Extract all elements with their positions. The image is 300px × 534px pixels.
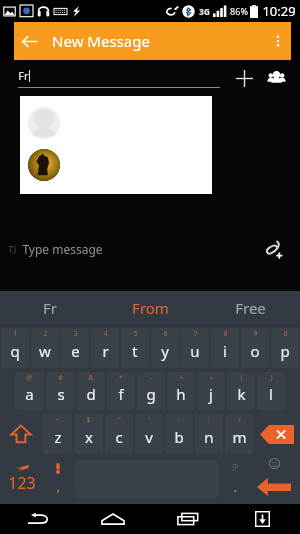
staticText: 4 xyxy=(103,329,108,339)
button[interactable]: * xyxy=(107,372,135,410)
button[interactable]: ' xyxy=(135,414,163,454)
button[interactable]: 123 xyxy=(0,456,44,502)
staticText: ~ xyxy=(55,415,60,425)
staticText: b xyxy=(174,427,184,447)
staticText: Fr xyxy=(43,298,57,318)
button[interactable]: Fr xyxy=(18,68,220,88)
staticText: w xyxy=(39,341,51,361)
button[interactable]: Choose contacts xyxy=(262,64,290,92)
staticText: 3G xyxy=(199,6,210,17)
staticText: h xyxy=(176,384,186,404)
button[interactable]: Back xyxy=(14,26,44,56)
button[interactable]: Backspace xyxy=(254,412,300,456)
staticText: # xyxy=(58,373,63,383)
staticText: 9 xyxy=(253,329,258,339)
staticText: - xyxy=(150,373,153,383)
button[interactable]: Enter xyxy=(248,456,300,502)
staticText: p xyxy=(280,341,290,361)
staticText: . xyxy=(233,476,238,496)
staticText: @ xyxy=(26,373,33,383)
staticText: k xyxy=(237,384,246,404)
button[interactable]: 3 xyxy=(61,328,89,368)
staticText: Free xyxy=(235,298,266,318)
button[interactable] xyxy=(20,144,212,186)
button[interactable]: # xyxy=(46,372,75,410)
staticText: i xyxy=(223,341,227,361)
staticText: * xyxy=(119,373,123,383)
button[interactable]: Recent apps xyxy=(150,504,225,534)
staticText: ' xyxy=(148,415,150,425)
button[interactable]: , xyxy=(44,456,72,502)
button[interactable]: From xyxy=(100,291,200,325)
button[interactable]: 6 xyxy=(151,328,179,368)
staticText: " xyxy=(118,415,121,425)
staticText: v xyxy=(145,427,153,447)
staticText: g xyxy=(146,384,156,404)
button[interactable]: = xyxy=(197,372,225,410)
button[interactable]: ; xyxy=(195,414,223,454)
button[interactable]: 7 xyxy=(181,328,209,368)
button[interactable]: - xyxy=(137,372,165,410)
staticText: 86% xyxy=(230,5,248,17)
staticText: & xyxy=(88,373,94,383)
button[interactable]: Shift xyxy=(0,412,42,456)
staticText: = xyxy=(209,373,214,383)
staticText: : xyxy=(178,415,180,425)
staticText: 7 xyxy=(193,329,198,339)
button[interactable]: 0 xyxy=(271,328,299,368)
button[interactable]: Free xyxy=(200,291,300,325)
button[interactable]: @ xyxy=(15,372,44,410)
staticText: q xyxy=(10,341,20,361)
button[interactable]: !? xyxy=(222,456,248,502)
staticText: ) xyxy=(270,373,273,383)
button[interactable]: 1 xyxy=(1,328,29,368)
staticText: 5 xyxy=(133,329,138,339)
staticText: u xyxy=(190,341,200,361)
staticText: y xyxy=(161,341,169,361)
button[interactable]: Type message xyxy=(22,241,258,257)
staticText: z xyxy=(54,427,62,447)
button[interactable]: 4 xyxy=(91,328,119,368)
button[interactable]: ) xyxy=(257,372,285,410)
button[interactable] xyxy=(20,102,212,144)
button[interactable]: / xyxy=(225,414,253,454)
staticText: T) xyxy=(8,243,16,255)
staticText: From xyxy=(132,298,169,318)
button[interactable]: 9 xyxy=(241,328,269,368)
staticText: 8 xyxy=(223,329,228,339)
staticText: !? xyxy=(232,462,238,473)
button[interactable]: 2 xyxy=(31,328,59,368)
staticText: / xyxy=(238,415,241,425)
staticText: Fr xyxy=(18,68,29,83)
staticText: a xyxy=(25,384,34,404)
button[interactable]: ( xyxy=(227,372,255,410)
staticText: + xyxy=(179,373,184,383)
button[interactable]: 5 xyxy=(121,328,149,368)
button[interactable]: Fr xyxy=(0,291,100,325)
button[interactable]: Hide keyboard xyxy=(225,504,300,534)
staticText: 123 xyxy=(8,472,36,494)
button[interactable]: Attach xyxy=(258,233,290,265)
button[interactable]: : xyxy=(165,414,193,454)
button[interactable]: & xyxy=(77,372,105,410)
button[interactable]: More options xyxy=(265,28,291,54)
staticText: f xyxy=(118,384,124,404)
button[interactable]: 8 xyxy=(211,328,239,368)
staticText: e xyxy=(71,341,80,361)
staticText: $ xyxy=(86,415,91,425)
button[interactable]: + xyxy=(167,372,195,410)
staticText: j xyxy=(209,384,213,404)
button[interactable]: Home xyxy=(75,504,150,534)
staticText: 2 xyxy=(43,329,48,339)
staticText: 10:29 xyxy=(262,2,296,20)
button[interactable]: Back xyxy=(0,504,75,534)
staticText: c xyxy=(115,427,123,447)
staticText: 6 xyxy=(163,329,168,339)
button[interactable]: ~ xyxy=(43,414,72,454)
button[interactable]: Add recipient xyxy=(230,64,258,92)
staticText: 0 xyxy=(283,329,288,339)
staticText: , xyxy=(56,475,61,495)
button[interactable]: $ xyxy=(74,414,103,454)
button[interactable]: " xyxy=(105,414,133,454)
